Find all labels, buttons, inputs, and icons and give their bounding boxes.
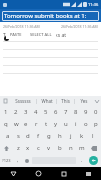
button[interactable]: Shift <box>0 142 13 154</box>
button[interactable]: q <box>0 118 11 130</box>
button[interactable]: 5 <box>41 106 51 118</box>
button[interactable]: x <box>23 142 33 154</box>
button[interactable]: d <box>23 130 33 142</box>
staticText: k <box>80 132 84 140</box>
staticText: q <box>4 120 8 128</box>
staticText: 7 <box>64 108 68 116</box>
button[interactable]: 2 <box>11 106 21 118</box>
staticText: b <box>58 144 62 152</box>
button[interactable]: e <box>21 118 31 130</box>
button[interactable]: Sssssss <box>10 96 36 106</box>
button[interactable]: Tomorrow submit books at 1: <box>2 11 99 21</box>
button[interactable]: 1 <box>0 106 11 118</box>
button[interactable]: g <box>43 130 54 142</box>
button[interactable]: o <box>81 118 91 130</box>
staticText: 6 <box>54 108 58 116</box>
button[interactable]: a <box>3 130 13 142</box>
button[interactable]: i <box>71 118 81 130</box>
staticText: This <box>61 98 70 104</box>
button[interactable]: SELECT ALL <box>28 31 54 38</box>
button[interactable]: Keyboard switcher <box>76 167 101 180</box>
button[interactable]: More suggestions <box>92 96 101 106</box>
button[interactable]: h <box>54 130 65 142</box>
staticText: a <box>6 132 10 140</box>
staticText: 8 <box>74 108 78 116</box>
staticText: n <box>69 144 73 152</box>
staticText: t <box>45 120 48 128</box>
staticText: v <box>47 144 51 152</box>
staticText: Sssssss <box>15 98 31 104</box>
button[interactable]: k <box>76 130 87 142</box>
staticText: ?123 <box>2 158 11 163</box>
staticText: e <box>24 120 28 128</box>
staticText: 1 <box>4 108 8 116</box>
button[interactable]: r <box>31 118 41 130</box>
button[interactable]: n <box>65 142 76 154</box>
button[interactable]: t <box>41 118 51 130</box>
button[interactable]: . <box>77 154 86 167</box>
staticText: 4 <box>34 108 38 116</box>
staticText: o <box>84 120 88 128</box>
button[interactable]: 9 <box>81 106 91 118</box>
staticText: 0 <box>94 108 98 116</box>
button[interactable]: 6 <box>51 106 61 118</box>
staticText: 3 <box>24 108 28 116</box>
button[interactable]: Yes <box>75 96 92 106</box>
button[interactable]: Emoji <box>22 154 31 167</box>
staticText: Tomorrow submit books at 1: <box>4 12 87 20</box>
staticText: y <box>54 120 58 128</box>
staticText: 26/Feb/2018 11:36 AM <box>3 24 40 29</box>
staticText: Yes <box>80 98 88 104</box>
staticText: p <box>94 120 98 128</box>
button[interactable]: PASTE <box>8 31 24 38</box>
staticText: What <box>41 98 53 104</box>
staticText: x <box>26 144 30 152</box>
button[interactable]: j <box>65 130 76 142</box>
staticText: w <box>14 120 19 128</box>
button[interactable]: This <box>57 96 74 106</box>
button[interactable]: 3 <box>21 106 31 118</box>
button[interactable]: Recents <box>51 167 76 180</box>
button[interactable]: m <box>76 142 87 154</box>
button[interactable]: Back <box>0 167 26 180</box>
button[interactable]: Backspace <box>87 142 101 154</box>
button[interactable]: , <box>13 154 22 167</box>
button[interactable]: y <box>51 118 61 130</box>
staticText: SELECT ALL <box>30 32 52 37</box>
staticText: j <box>70 132 72 140</box>
staticText: 2 <box>14 108 18 116</box>
button[interactable]: f <box>33 130 43 142</box>
button[interactable]: l <box>87 130 98 142</box>
staticText: m <box>79 144 85 152</box>
staticText: g <box>47 132 51 140</box>
button[interactable]: ?123 <box>0 154 13 167</box>
staticText: PASTE <box>10 32 22 37</box>
staticText: c <box>37 144 40 152</box>
button[interactable]: 7 <box>61 106 71 118</box>
button[interactable]: 8 <box>71 106 81 118</box>
button[interactable]: Home <box>26 167 51 180</box>
button[interactable]: c <box>33 142 43 154</box>
button[interactable]: p <box>91 118 101 130</box>
button[interactable]: What <box>37 96 56 106</box>
staticText: , <box>17 157 19 164</box>
staticText: 11:36 <box>88 2 99 7</box>
button[interactable]: u <box>61 118 71 130</box>
staticText: 9 <box>84 108 88 116</box>
button[interactable]: 0 <box>91 106 101 118</box>
button[interactable]: 4 <box>31 106 41 118</box>
staticText: s <box>17 132 20 140</box>
button[interactable]: Clipboard <box>0 96 10 106</box>
staticText: d <box>26 132 30 140</box>
button[interactable]: s <box>13 130 23 142</box>
button[interactable]: b <box>54 142 65 154</box>
staticText: . <box>81 157 83 164</box>
staticText: f <box>37 132 40 140</box>
staticText: l <box>92 132 94 140</box>
button[interactable]: Enter <box>89 156 98 165</box>
button[interactable]: z <box>13 142 23 154</box>
staticText: i <box>75 120 77 128</box>
button[interactable]: v <box>43 142 54 154</box>
button[interactable]: w <box>11 118 21 130</box>
